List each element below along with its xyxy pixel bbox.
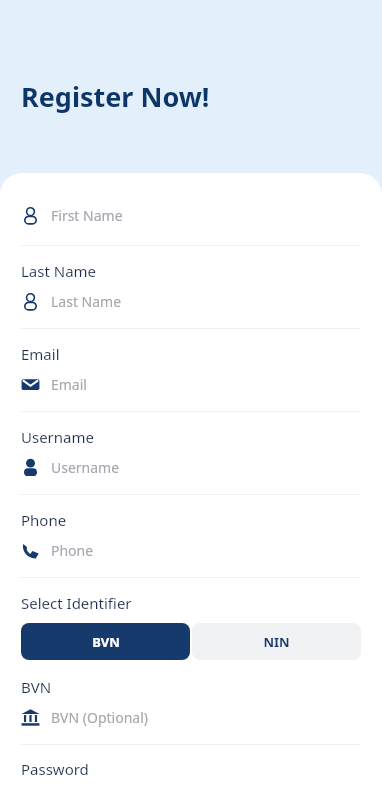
staticText: BVN: [21, 677, 52, 697]
staticText: Email: [51, 375, 87, 394]
staticText: BVN (Optional): [51, 708, 148, 727]
other: First Name: [21, 206, 40, 225]
staticText: Password: [21, 759, 89, 779]
other: Username: [21, 458, 40, 477]
staticText: BVN: [92, 633, 120, 651]
staticText: Email: [21, 344, 60, 364]
staticText: NIN: [263, 633, 290, 651]
staticText: Username: [21, 427, 94, 447]
button[interactable]: Email: [0, 329, 382, 411]
staticText: Username: [51, 458, 120, 477]
button[interactable]: Username: [0, 412, 382, 494]
button[interactable]: NIN: [192, 623, 361, 660]
staticText: Register Now!: [21, 78, 210, 115]
button[interactable]: BVN: [21, 623, 190, 660]
other: Last Name: [21, 292, 40, 311]
button[interactable]: Phone: [0, 495, 382, 577]
button[interactable]: Last Name: [0, 246, 382, 328]
other: Phone: [21, 541, 40, 560]
other: BVN (Optional): [21, 708, 40, 727]
button[interactable]: First Name: [0, 204, 382, 226]
button[interactable]: BVN: [0, 677, 382, 744]
staticText: Last Name: [21, 261, 97, 281]
staticText: First Name: [51, 206, 123, 225]
other: Email: [21, 375, 40, 394]
staticText: Select Identifier: [21, 593, 132, 613]
staticText: Phone: [21, 510, 67, 530]
staticText: Phone: [51, 541, 94, 560]
staticText: Last Name: [51, 292, 122, 311]
